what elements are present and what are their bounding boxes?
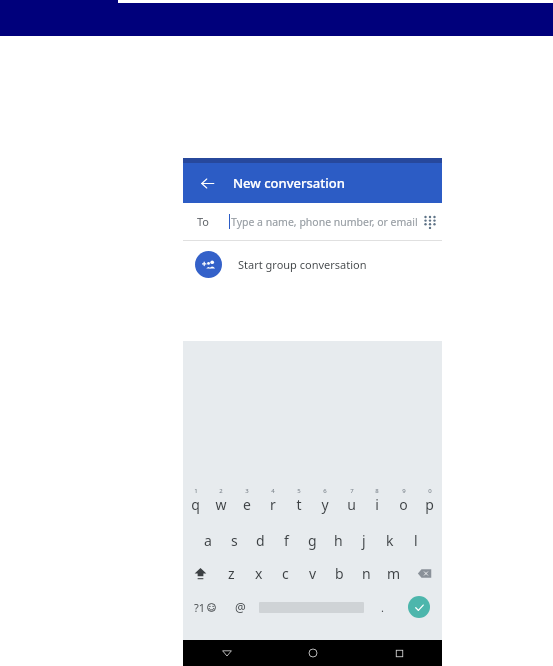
button[interactable]: f [273, 530, 299, 550]
staticText: l [414, 531, 418, 550]
button[interactable]: v [299, 562, 326, 584]
button[interactable]: s [221, 530, 247, 550]
staticText: ?1 [194, 600, 206, 615]
button[interactable]: m [380, 562, 407, 584]
staticText: v [309, 564, 317, 583]
staticText: 3 [245, 487, 249, 495]
staticText: e [243, 495, 251, 514]
button[interactable]: ?1 [183, 594, 226, 620]
button[interactable]: 5 [286, 487, 312, 517]
button[interactable]: Start group conversation [183, 241, 442, 288]
button[interactable]: 2 [208, 487, 234, 517]
button[interactable]: l [403, 530, 429, 550]
button[interactable]: d [247, 530, 273, 550]
staticText: 9 [402, 487, 406, 495]
button[interactable]: Back [183, 640, 270, 666]
staticText: x [255, 564, 263, 583]
staticText: y [321, 495, 329, 514]
button[interactable]: Shift [183, 562, 218, 584]
staticText: 1 [194, 487, 198, 495]
staticText: New conversation [233, 174, 345, 192]
button[interactable]: a [195, 530, 221, 550]
button[interactable]: . [368, 594, 396, 620]
staticText: q [191, 495, 200, 514]
button[interactable]: @ [226, 594, 254, 620]
staticText: p [425, 495, 434, 514]
button[interactable]: 8 [364, 487, 390, 517]
staticText: Type a name, phone number, or email [231, 215, 418, 229]
button[interactable]: 7 [338, 487, 364, 517]
staticText: b [335, 564, 344, 583]
button[interactable]: Space [254, 594, 368, 620]
staticText: c [282, 564, 289, 583]
staticText: 0 [428, 487, 432, 495]
button[interactable]: x [245, 562, 272, 584]
staticText: g [308, 531, 317, 550]
button[interactable]: Home [270, 640, 356, 666]
staticText: f [284, 531, 289, 550]
button[interactable]: 3 [234, 487, 260, 517]
button[interactable]: Send [396, 594, 442, 620]
button[interactable]: 6 [312, 487, 338, 517]
button[interactable]: h [325, 530, 351, 550]
staticText: @ [235, 599, 246, 615]
button[interactable]: b [326, 562, 353, 584]
button[interactable]: g [299, 530, 325, 550]
button[interactable]: n [353, 562, 380, 584]
button[interactable]: j [351, 530, 377, 550]
staticText: 5 [297, 487, 301, 495]
staticText: j [362, 531, 366, 550]
staticText: t [296, 495, 302, 514]
staticText: u [347, 495, 356, 514]
button[interactable]: Backspace [407, 562, 442, 584]
button[interactable]: 1 [183, 487, 208, 517]
button[interactable]: Dialpad [418, 209, 442, 235]
staticText: a [204, 531, 212, 550]
button[interactable]: z [218, 562, 245, 584]
staticText: r [270, 495, 276, 514]
staticText: h [334, 531, 343, 550]
staticText: s [231, 531, 238, 550]
button[interactable]: Recents [356, 640, 442, 666]
staticText: 7 [350, 487, 354, 495]
staticText: . [381, 600, 384, 615]
button[interactable]: 9 [390, 487, 416, 517]
staticText: i [375, 495, 379, 514]
button[interactable]: Back [193, 169, 221, 197]
staticText: 8 [375, 487, 379, 495]
staticText: k [386, 531, 394, 550]
staticText: o [399, 495, 408, 514]
staticText: 2 [219, 487, 223, 495]
staticText: 6 [323, 487, 327, 495]
staticText: To [197, 214, 210, 229]
button[interactable]: 4 [260, 487, 286, 517]
button[interactable]: To [183, 203, 442, 240]
staticText: n [362, 564, 371, 583]
staticText: 4 [271, 487, 275, 495]
button[interactable]: c [272, 562, 299, 584]
staticText: z [228, 564, 235, 583]
staticText: d [256, 531, 265, 550]
staticText: Start group conversation [238, 257, 367, 272]
staticText: w [215, 495, 227, 514]
button[interactable]: 0 [416, 487, 442, 517]
button[interactable]: k [377, 530, 403, 550]
staticText: m [387, 564, 401, 583]
